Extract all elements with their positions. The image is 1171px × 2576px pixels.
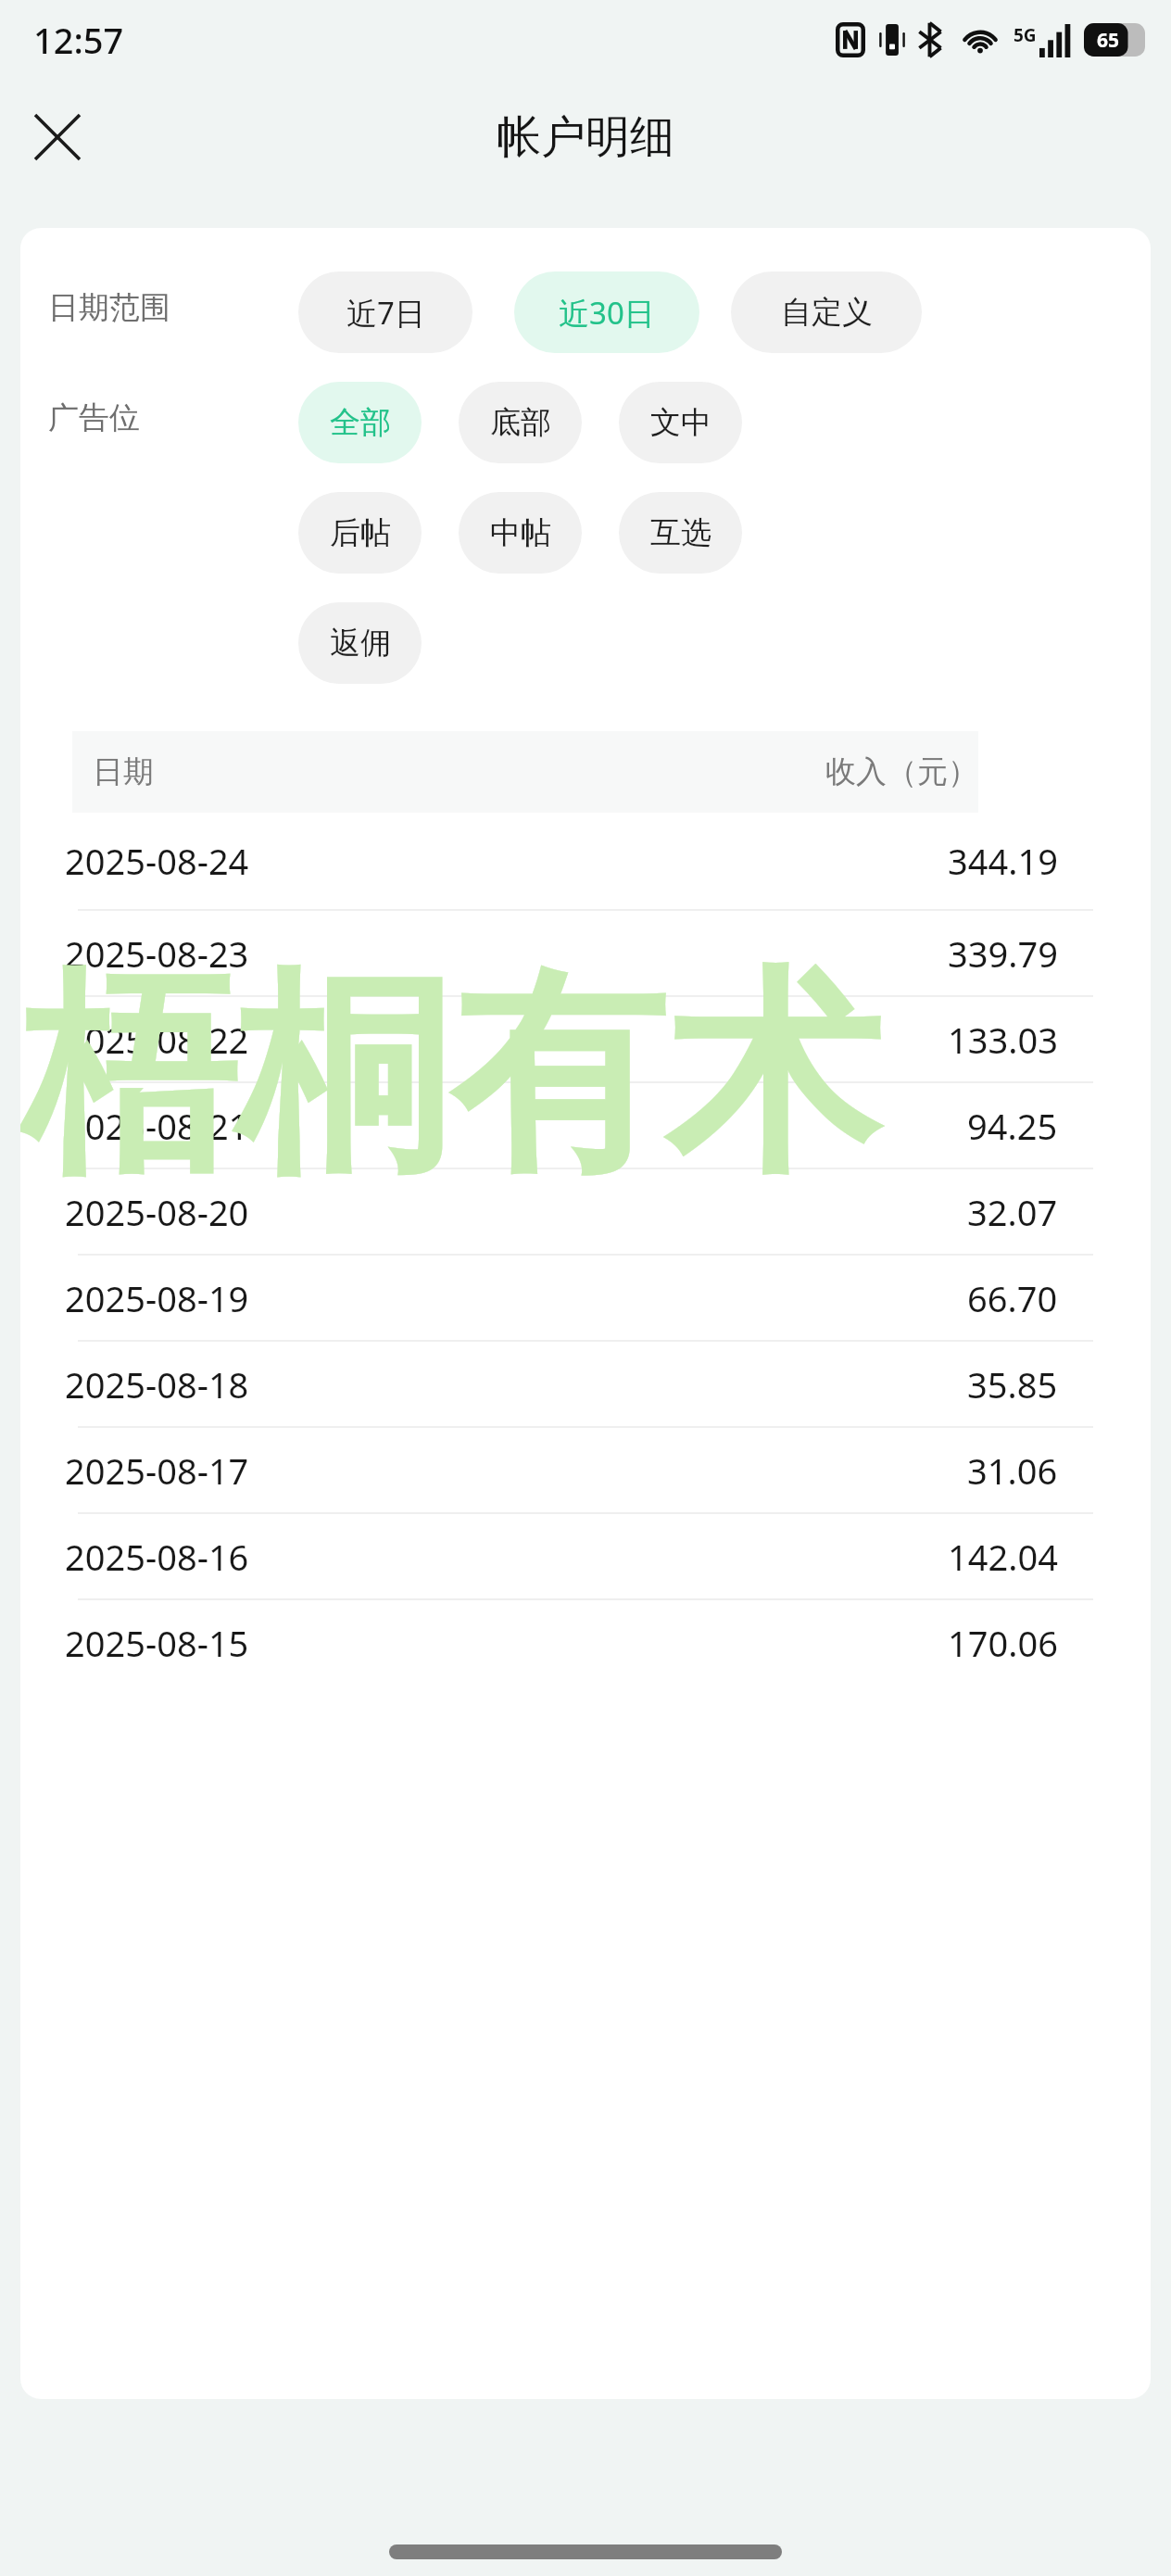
staticText: 广告位 [48, 398, 298, 437]
button[interactable]: 2025-08-17 [20, 1428, 1151, 1514]
button[interactable]: 后帖 [298, 492, 422, 574]
staticText: 12:57 [33, 16, 124, 64]
staticText: 94.25 [967, 1102, 1058, 1150]
staticText: 142.04 [948, 1533, 1058, 1581]
button[interactable]: 底部 [459, 382, 582, 463]
staticText: 2025-08-22 [65, 1016, 249, 1064]
button[interactable]: 2025-08-24 [20, 813, 1151, 911]
staticText: 日期 [93, 752, 154, 791]
staticText: 5G [1014, 23, 1037, 47]
button[interactable]: 2025-08-22 [20, 997, 1151, 1083]
button[interactable]: 2025-08-18 [20, 1342, 1151, 1428]
staticText: 日期范围 [48, 288, 298, 327]
button[interactable]: 2025-08-21 [20, 1083, 1151, 1169]
staticText: 收入（元） [825, 752, 978, 791]
staticText: 近7日 [346, 292, 425, 334]
staticText: 66.70 [967, 1274, 1058, 1322]
staticText: 互选 [650, 513, 711, 552]
staticText: 返佣 [330, 624, 391, 663]
button[interactable]: 2025-08-20 [20, 1169, 1151, 1256]
button[interactable]: Close [13, 93, 102, 182]
staticText: 近30日 [559, 292, 655, 334]
staticText: 自定义 [781, 293, 873, 332]
staticText: 梧桐有术 [20, 941, 880, 1212]
staticText: 35.85 [967, 1360, 1058, 1408]
staticText: 32.07 [967, 1188, 1058, 1236]
button[interactable]: 文中 [619, 382, 742, 463]
staticText: 2025-08-23 [65, 929, 249, 978]
button[interactable]: 自定义 [731, 271, 922, 353]
button[interactable]: 互选 [619, 492, 742, 574]
staticText: 2025-08-15 [65, 1619, 249, 1667]
staticText: 中帖 [490, 513, 551, 552]
staticText: 文中 [650, 403, 711, 442]
button[interactable]: 返佣 [298, 602, 422, 684]
staticText: 31.06 [967, 1446, 1058, 1495]
staticText: 2025-08-21 [65, 1102, 249, 1150]
button[interactable]: 近30日 [514, 271, 699, 353]
button[interactable]: 2025-08-19 [20, 1256, 1151, 1342]
staticText: 2025-08-17 [65, 1446, 249, 1495]
button[interactable]: 中帖 [459, 492, 582, 574]
button[interactable]: 2025-08-23 [20, 911, 1151, 997]
staticText: 170.06 [948, 1619, 1058, 1667]
button[interactable]: 2025-08-16 [20, 1514, 1151, 1600]
button[interactable]: 全部 [298, 382, 422, 463]
staticText: 2025-08-20 [65, 1188, 249, 1236]
staticText: 2025-08-16 [65, 1533, 249, 1581]
staticText: 339.79 [948, 929, 1058, 978]
staticText: 底部 [490, 403, 551, 442]
staticText: 65 [1097, 27, 1120, 54]
staticText: 2025-08-24 [65, 837, 249, 885]
staticText: 后帖 [330, 513, 391, 552]
staticText: 帐户明细 [497, 109, 674, 165]
staticText: 344.19 [948, 837, 1058, 885]
button[interactable]: 2025-08-15 [20, 1600, 1151, 1685]
staticText: 133.03 [948, 1016, 1058, 1064]
staticText: 2025-08-19 [65, 1274, 249, 1322]
staticText: 2025-08-18 [65, 1360, 249, 1408]
staticText: 全部 [330, 403, 391, 442]
button[interactable]: 近7日 [298, 271, 472, 353]
